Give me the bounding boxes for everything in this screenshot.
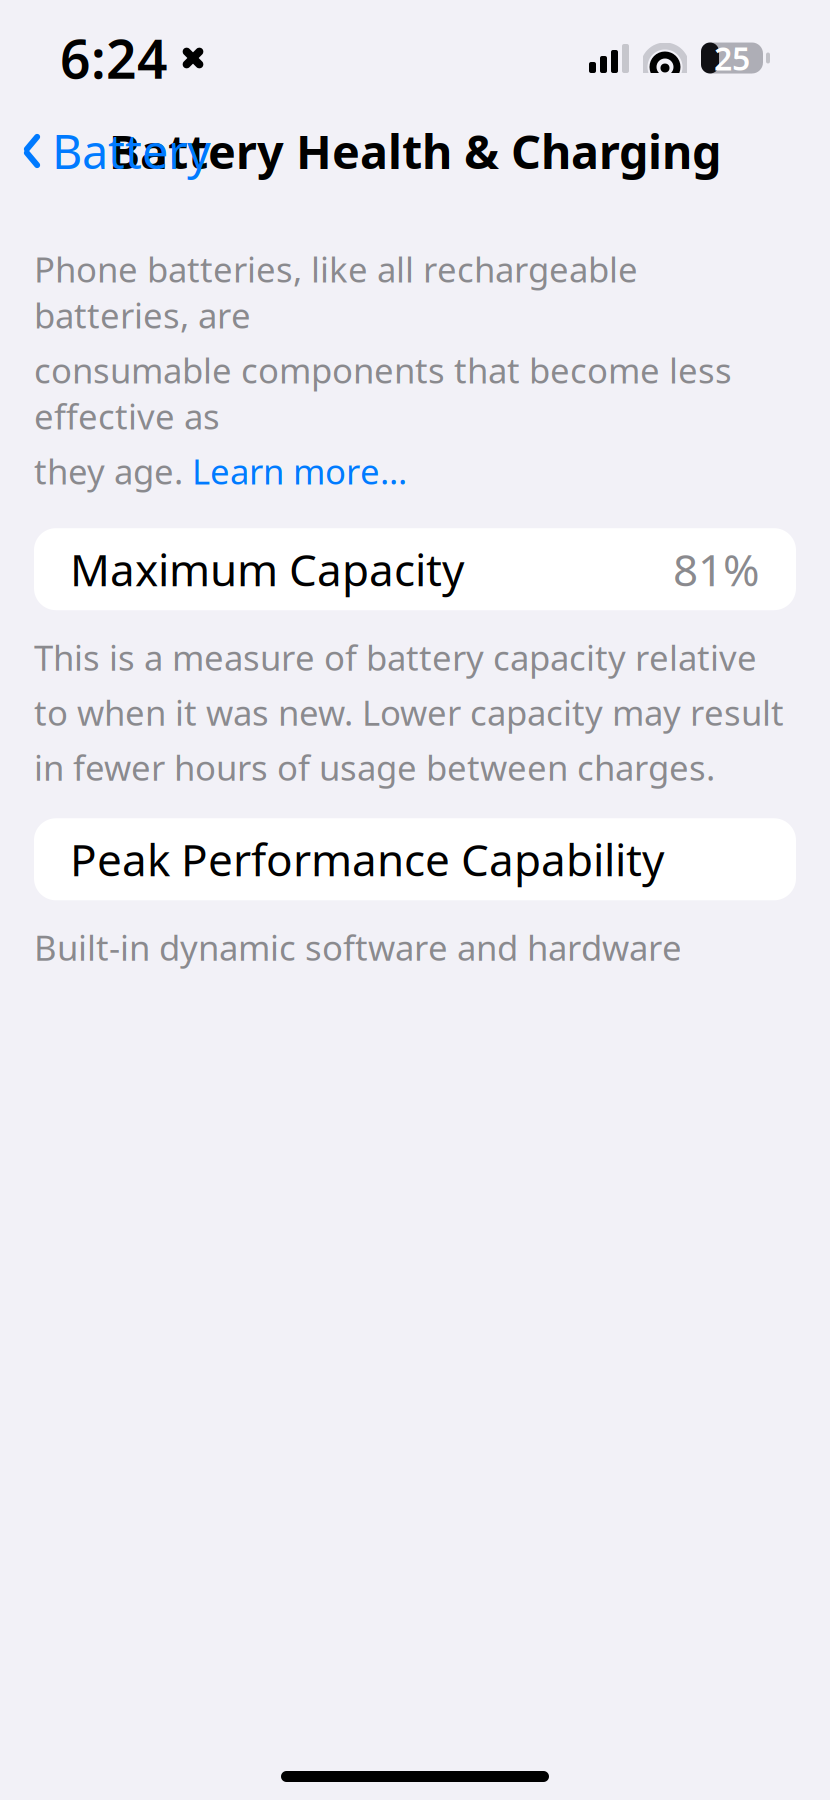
button[interactable]: Learn more...: [192, 448, 407, 494]
staticText: Battery: [52, 120, 211, 182]
staticText: Battery Health & Charging: [109, 120, 721, 182]
button[interactable]: Maximum Capacity: [34, 528, 796, 610]
staticText: consumable components that become less e…: [34, 347, 732, 439]
staticText: 81%: [673, 540, 760, 598]
staticText: This is a measure of battery capacity re…: [34, 634, 784, 790]
staticText: 6:24: [60, 23, 168, 93]
staticText: Phone batteries, like all rechargeable b…: [34, 246, 638, 338]
staticText: they age.: [34, 448, 192, 494]
staticText: Peak Performance Capability: [70, 830, 664, 888]
staticText: Built-in dynamic software and hardware s…: [34, 924, 746, 1135]
staticText: Maximum Capacity: [70, 540, 464, 598]
staticText: Learn more...: [192, 448, 407, 494]
button[interactable]: Peak Performance Capability: [34, 818, 796, 900]
button[interactable]: Battery: [0, 106, 233, 196]
staticText: 25: [714, 37, 750, 79]
